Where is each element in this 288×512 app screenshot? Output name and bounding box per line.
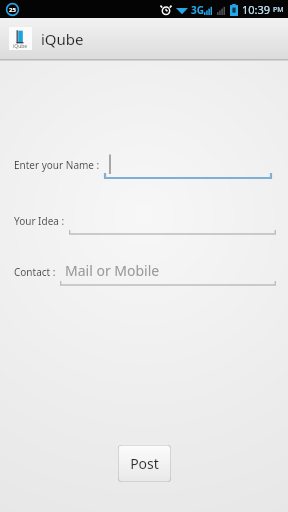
staticText: Enter your Name : [14,158,100,172]
button[interactable]: Post [118,445,171,482]
staticText: PM [273,5,284,15]
staticText: iQube [41,29,84,49]
staticText: 25 [9,6,16,14]
staticText: Your Idea : [14,214,65,228]
button[interactable]: Mail or Mobile [60,257,276,287]
button[interactable] [104,150,272,180]
staticText: iQube [13,43,28,50]
staticText: Post [130,454,159,473]
button[interactable] [69,206,276,236]
staticText: 10:39 [242,2,271,17]
staticText: Contact : [14,265,56,279]
staticText: Mail or Mobile [65,261,160,280]
staticText: 3G [191,3,204,17]
